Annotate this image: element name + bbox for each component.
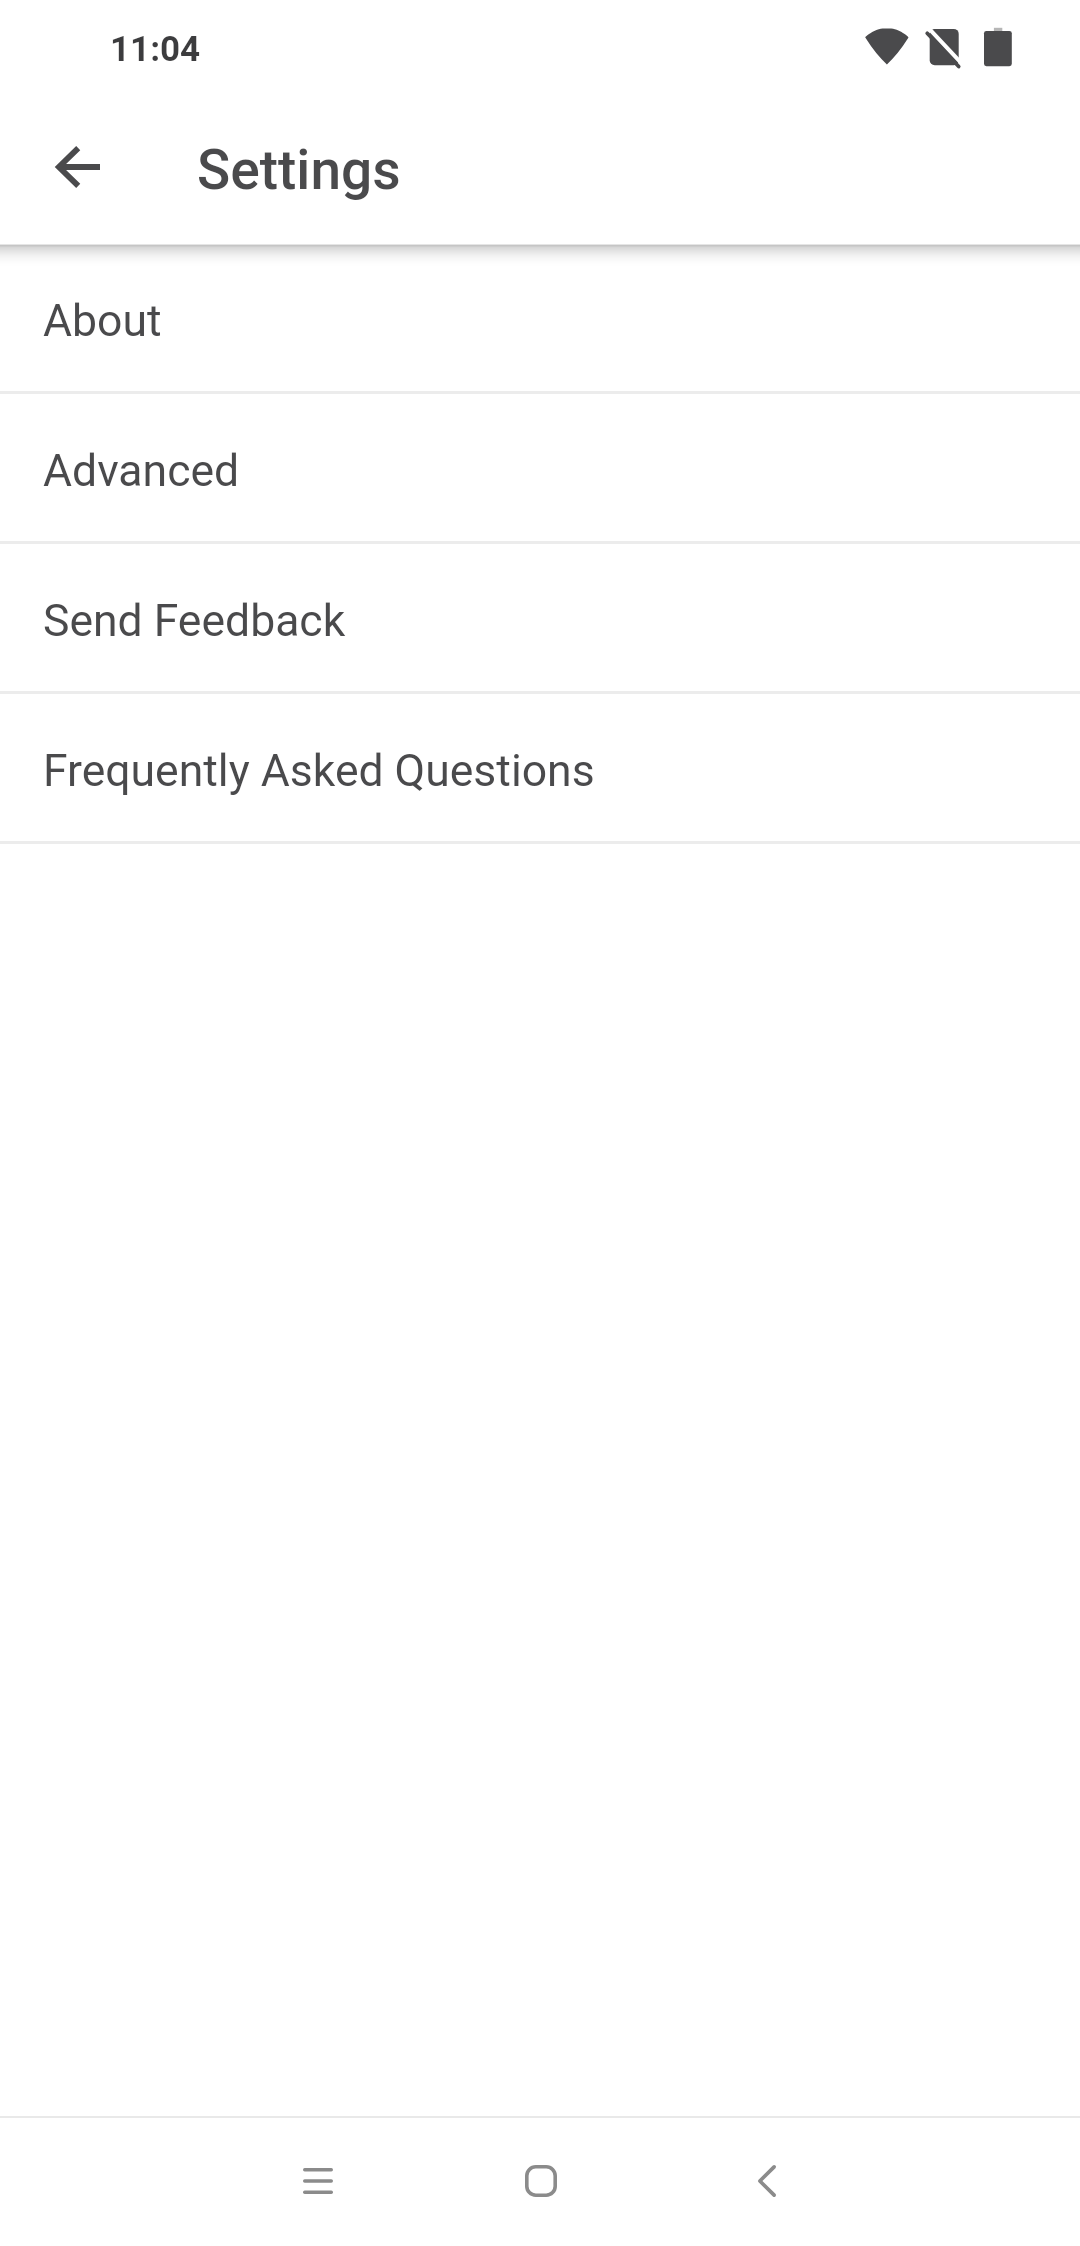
staticText: Settings bbox=[197, 138, 401, 202]
button[interactable]: Advanced bbox=[0, 394, 1080, 541]
staticText: About bbox=[43, 295, 162, 347]
button[interactable]: Home bbox=[493, 2133, 589, 2229]
button[interactable]: Frequently Asked Questions bbox=[0, 694, 1080, 841]
staticText: Advanced bbox=[43, 445, 240, 497]
button[interactable]: About bbox=[0, 244, 1080, 391]
button[interactable]: Back bbox=[719, 2133, 815, 2229]
staticText: Frequently Asked Questions bbox=[43, 745, 595, 797]
button[interactable]: Send Feedback bbox=[0, 544, 1080, 691]
staticText: 11:04 bbox=[110, 29, 201, 70]
button[interactable]: Recent apps bbox=[270, 2133, 366, 2229]
button[interactable]: Navigate up bbox=[30, 119, 126, 215]
staticText: Send Feedback bbox=[43, 595, 346, 647]
